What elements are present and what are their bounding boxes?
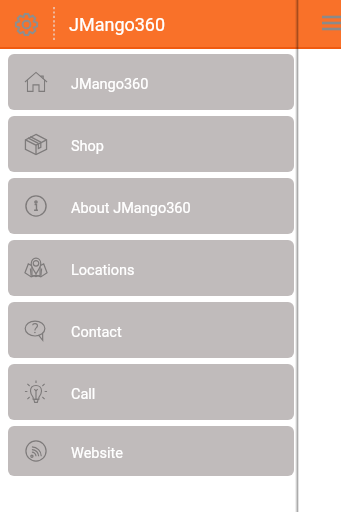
button[interactable]: Locations [8, 240, 294, 296]
staticText: Website [71, 445, 123, 462]
staticText: Call [71, 386, 96, 403]
button[interactable]: Contact [8, 302, 294, 358]
button[interactable]: Menu [314, 8, 341, 40]
staticText: Locations [71, 262, 135, 279]
button[interactable]: Website [8, 426, 294, 476]
button[interactable]: About JMango360 [8, 178, 294, 234]
button[interactable]: Call [8, 364, 294, 420]
button[interactable]: Shop [8, 116, 294, 172]
staticText: JMango360 [69, 14, 166, 35]
staticText: Contact [71, 324, 122, 341]
button[interactable]: Settings [14, 12, 39, 37]
button[interactable]: JMango360 [8, 54, 294, 110]
staticText: Shop [71, 138, 105, 155]
staticText: JMango360 [71, 76, 149, 93]
staticText: About JMango360 [71, 200, 191, 217]
